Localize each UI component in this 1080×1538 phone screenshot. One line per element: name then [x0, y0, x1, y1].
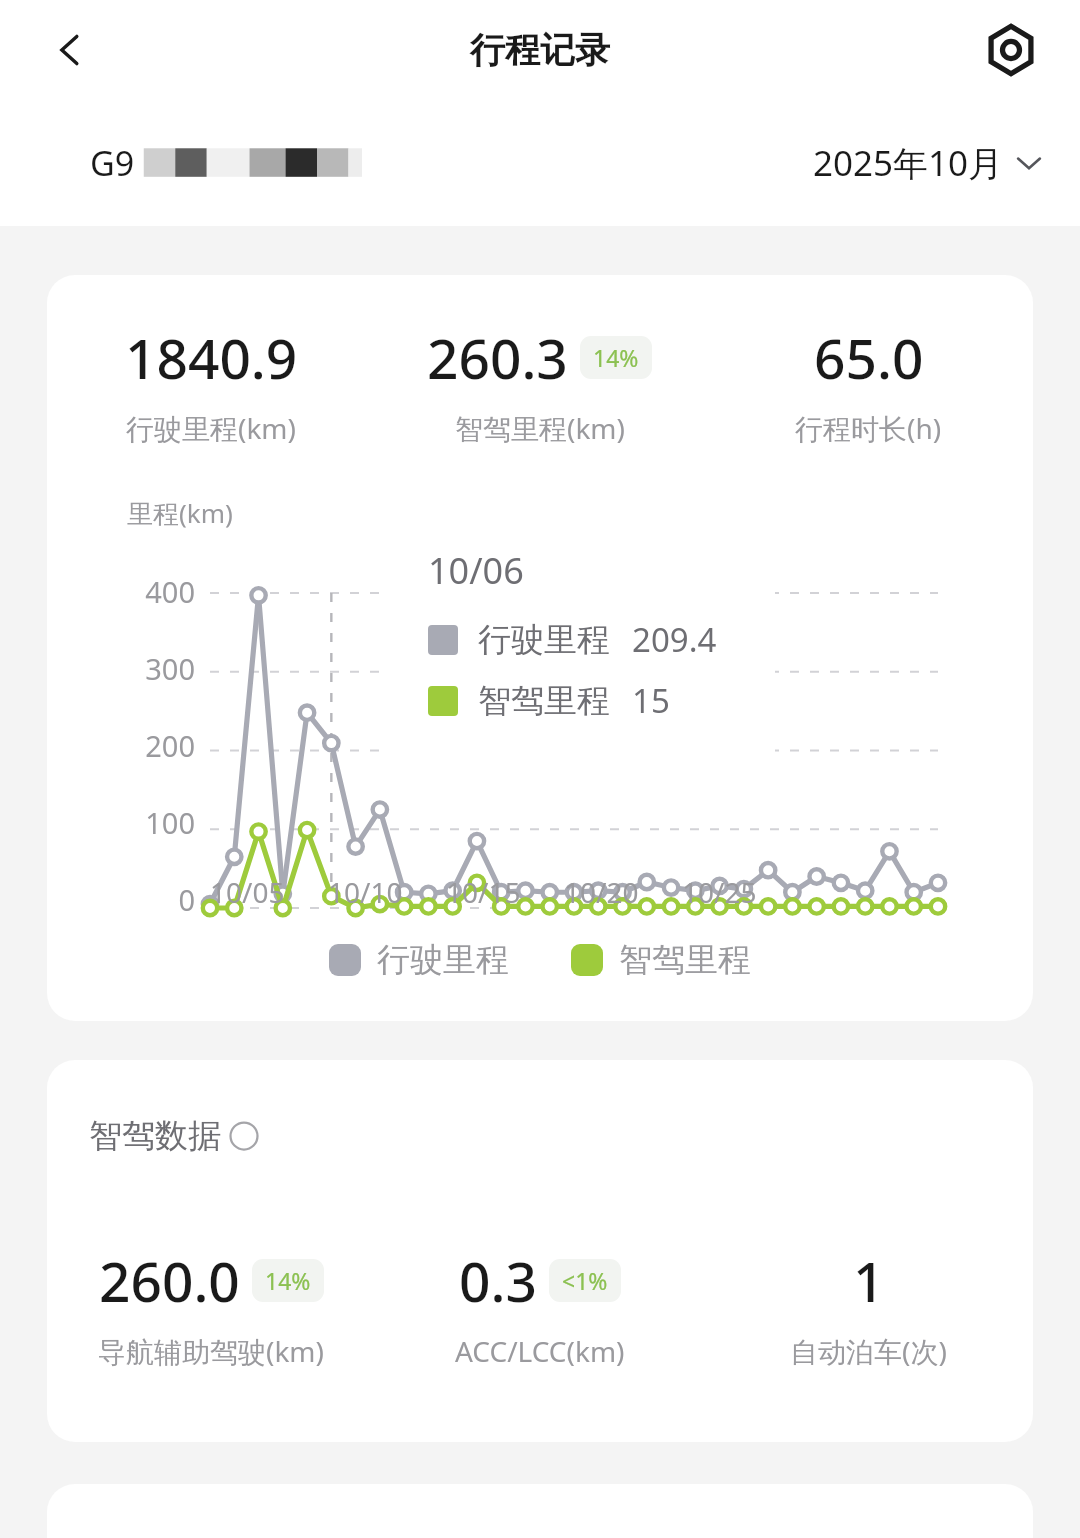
staticText: 2025年10月 — [813, 139, 1004, 187]
staticText: 209.4 — [632, 617, 717, 662]
staticText: 14% — [593, 342, 639, 373]
staticText: 导航辅助驾驶(km) — [98, 1332, 324, 1370]
button[interactable]: 260.0 — [47, 1243, 375, 1370]
staticText: 300 — [65, 649, 195, 688]
button[interactable]: 行驶里程 — [329, 939, 509, 981]
staticText: 260.0 — [99, 1243, 240, 1318]
staticText: 0 — [65, 880, 195, 919]
button[interactable]: 1840.9 — [47, 320, 375, 447]
staticText: 行驶里程 — [478, 619, 610, 661]
other: Help — [229, 1121, 259, 1151]
staticText: <1% — [562, 1265, 608, 1296]
staticText: 行驶里程 — [377, 939, 509, 981]
button[interactable]: Back — [40, 20, 100, 80]
staticText: 行驶里程(km) — [126, 409, 296, 447]
staticText: 智驾里程(km) — [455, 409, 625, 447]
staticText: 200 — [65, 726, 195, 765]
button[interactable]: 0.3 — [375, 1243, 704, 1370]
staticText: 智驾数据 — [89, 1115, 221, 1157]
staticText: 100 — [65, 803, 195, 842]
staticText: 400 — [65, 572, 195, 611]
staticText: 智驾里程 — [619, 939, 751, 981]
staticText: 260.3 — [427, 320, 568, 395]
button[interactable]: 智驾里程 — [571, 939, 751, 981]
button[interactable]: 65.0 — [704, 320, 1033, 447]
staticText: 1840.9 — [125, 320, 298, 395]
staticText: 65.0 — [814, 320, 924, 395]
staticText: 10/25 — [682, 873, 757, 911]
staticText: 10/06 — [428, 546, 524, 595]
staticText: 里程(km) — [127, 495, 233, 531]
staticText: 14% — [265, 1265, 311, 1296]
button[interactable]: 1 — [704, 1243, 1033, 1370]
staticText: 10/10 — [328, 873, 403, 911]
staticText: 行程时长(h) — [795, 409, 942, 447]
staticText: 10/20 — [564, 873, 639, 911]
button[interactable]: 智驾数据 — [89, 1115, 259, 1157]
staticText: 10/05 — [210, 873, 285, 911]
staticText: ACC/LCC(km) — [455, 1332, 625, 1370]
staticText: G9 — [90, 140, 135, 186]
staticText: 0.3 — [459, 1243, 537, 1318]
staticText: 10/15 — [446, 873, 521, 911]
staticText: 智驾里程 — [478, 680, 610, 722]
staticText: 自动泊车(次) — [790, 1332, 947, 1370]
button[interactable]: Settings — [980, 19, 1042, 81]
button[interactable]: 260.3 — [375, 320, 704, 447]
staticText: 行程记录 — [470, 28, 610, 72]
button[interactable]: 2025年10月 — [813, 139, 1042, 187]
staticText: 1 — [853, 1243, 885, 1318]
staticText: 15 — [632, 678, 670, 723]
